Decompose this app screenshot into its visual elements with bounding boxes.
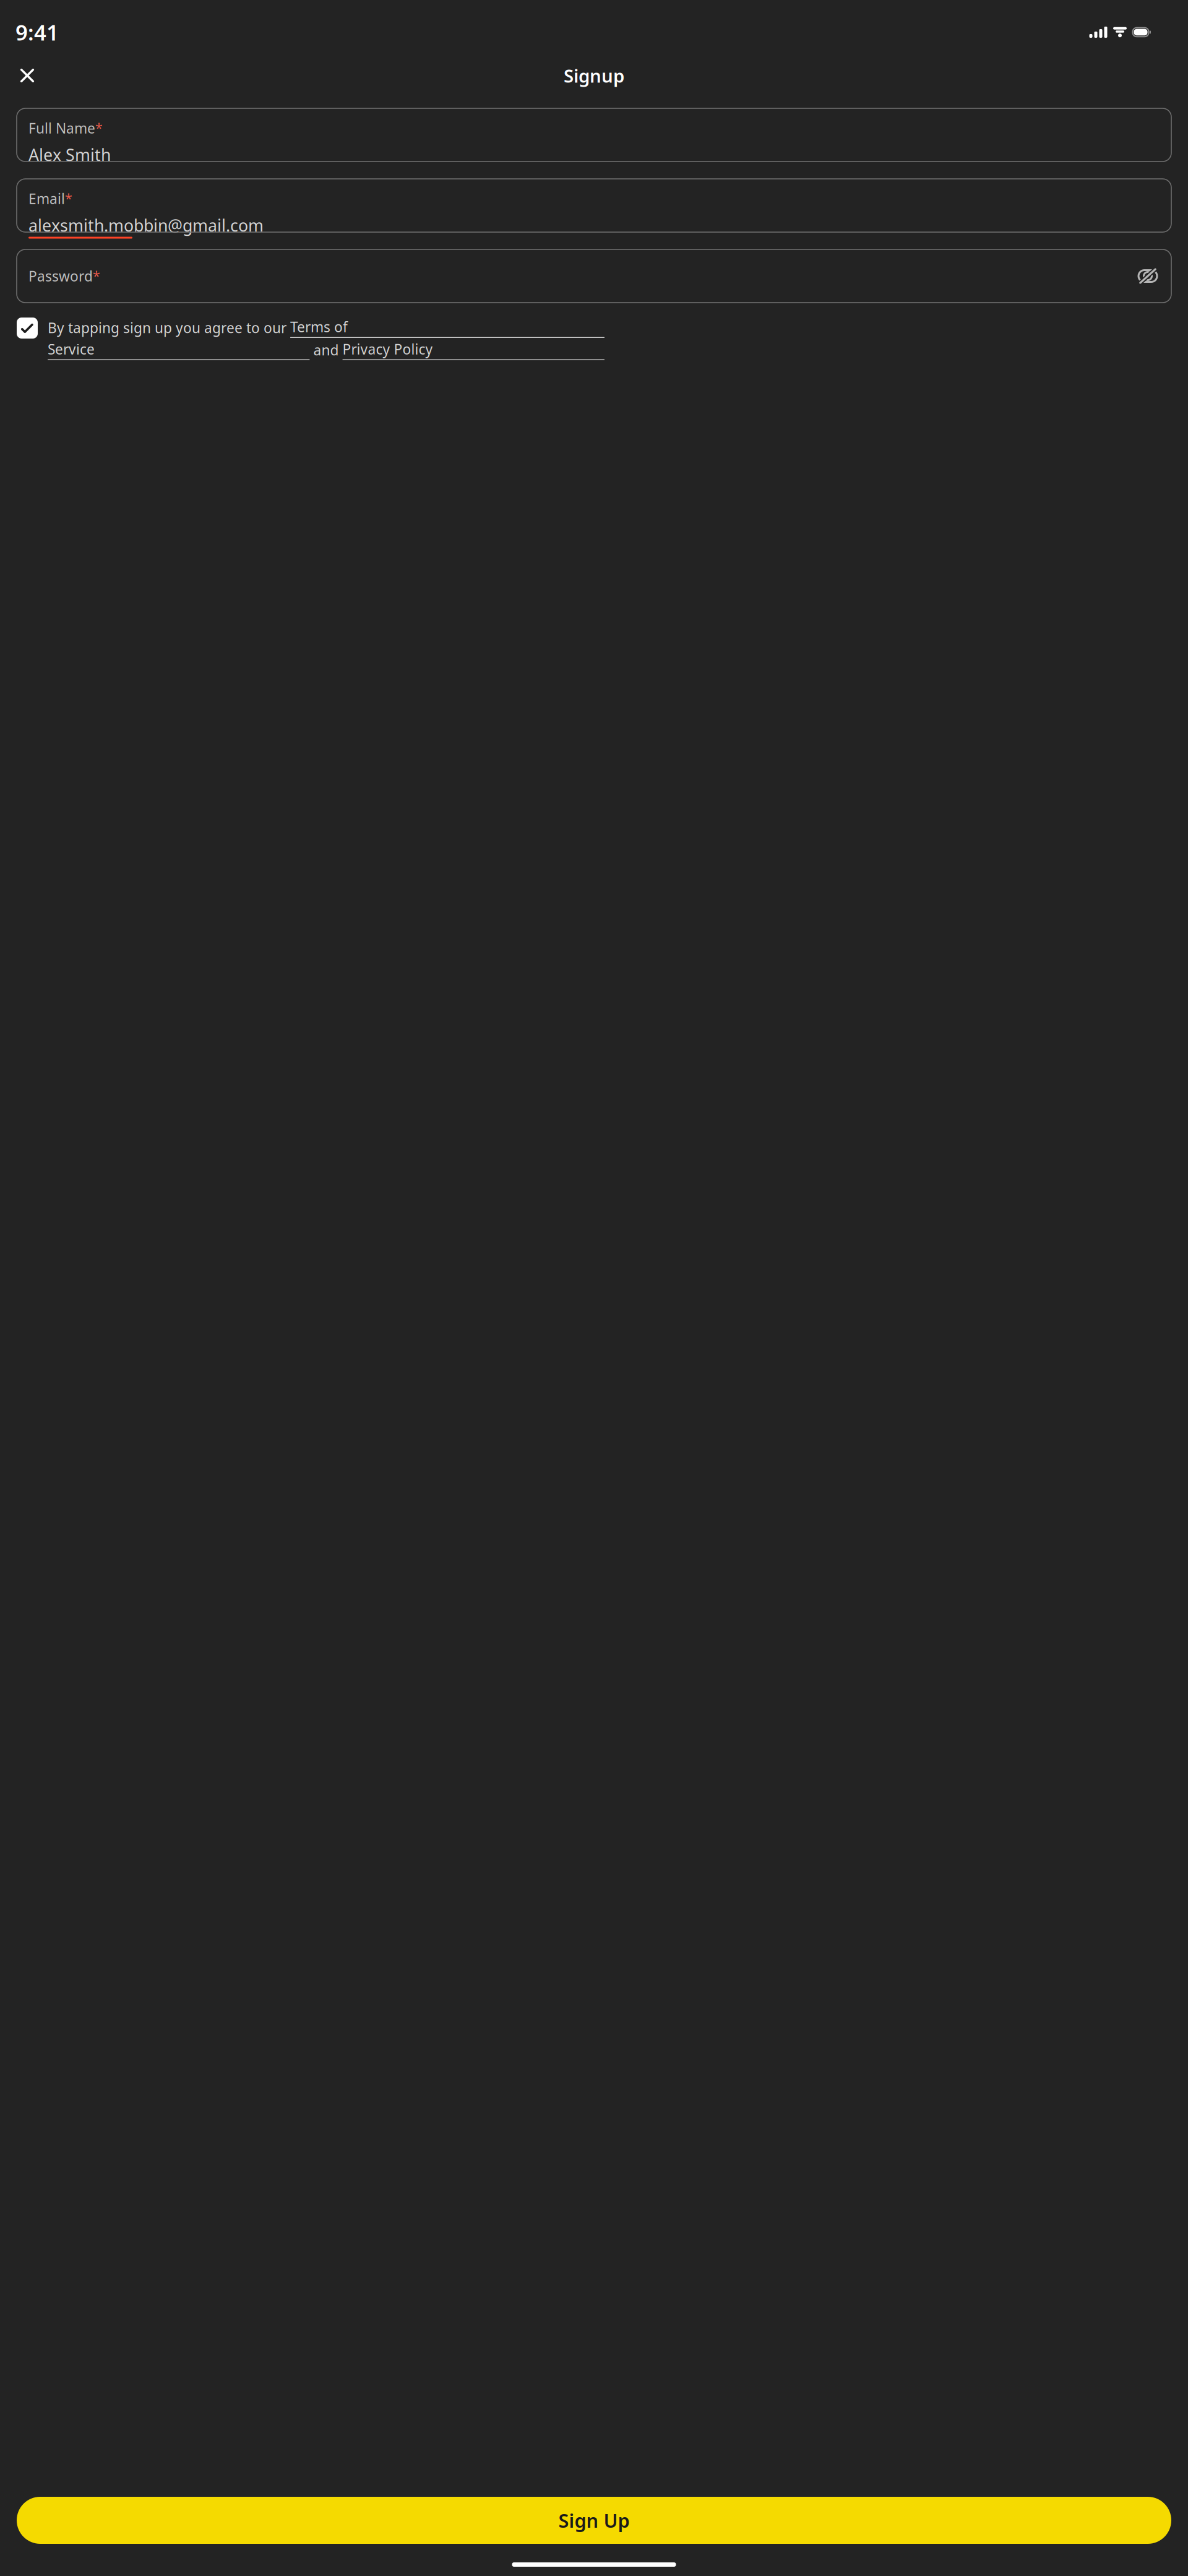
staticText: By tapping sign up you agree to our <box>48 318 290 337</box>
button[interactable]: Terms of <box>290 318 605 338</box>
staticText: Alex Smith <box>28 144 111 166</box>
button[interactable]: Email <box>17 179 1171 232</box>
button[interactable]: Sign Up <box>17 2497 1171 2544</box>
button[interactable]: Agree to terms <box>17 318 38 339</box>
staticText: Terms of <box>290 318 348 336</box>
button[interactable]: Service <box>48 340 310 360</box>
button[interactable]: Password <box>17 249 1171 303</box>
button[interactable]: Full Name <box>17 108 1171 162</box>
staticText: and <box>310 341 342 359</box>
staticText: alexsmith.mobbin@gmail.com <box>28 214 264 236</box>
staticText: Password <box>28 267 93 285</box>
button[interactable]: Close <box>11 59 43 92</box>
staticText: * <box>93 267 100 284</box>
staticText: Email <box>28 189 65 208</box>
staticText: Service <box>48 340 95 358</box>
staticText: Full Name <box>28 119 95 137</box>
button[interactable]: Privacy Policy <box>342 340 605 360</box>
staticText: * <box>95 119 103 136</box>
staticText: * <box>65 189 72 207</box>
staticText: Signup <box>564 63 624 88</box>
staticText: 9:41 <box>15 18 59 46</box>
staticText: Sign Up <box>558 2508 630 2533</box>
staticText: Privacy Policy <box>342 340 433 358</box>
